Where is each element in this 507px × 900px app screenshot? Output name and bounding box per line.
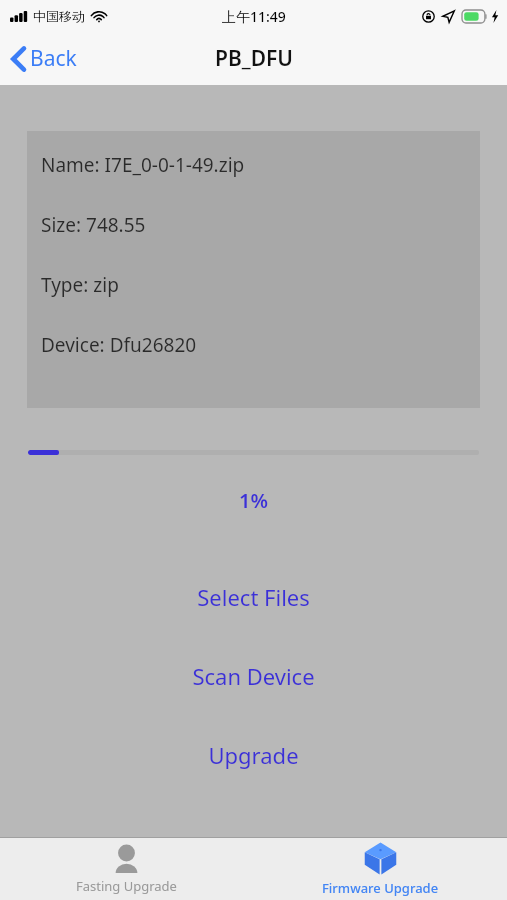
staticText: 上午11:49 (222, 7, 286, 26)
staticText: 1% (0, 487, 507, 514)
staticText: 中国移动 (33, 8, 85, 24)
staticText: Upgrade (208, 740, 299, 770)
staticText: Device: Dfu26820 (41, 332, 197, 358)
button[interactable]: Fasting Upgrade (0, 838, 253, 900)
button[interactable]: Scan Device (0, 661, 507, 691)
staticText: Firmware Upgrade (322, 879, 439, 897)
button[interactable]: Firmware Upgrade (253, 838, 507, 900)
staticText: Scan Device (192, 661, 315, 691)
staticText: Type: zip (41, 272, 119, 298)
staticText: PB_DFU (215, 44, 293, 73)
staticText: Size: 748.55 (41, 212, 146, 238)
button[interactable]: Select Files (0, 582, 507, 612)
staticText: Fasting Upgrade (76, 877, 177, 895)
button[interactable]: Upgrade (0, 740, 507, 770)
button[interactable]: Back (0, 38, 91, 79)
staticText: Back (30, 44, 77, 73)
staticText: Select Files (197, 582, 310, 612)
staticText: Name: I7E_0-0-1-49.zip (41, 152, 245, 178)
